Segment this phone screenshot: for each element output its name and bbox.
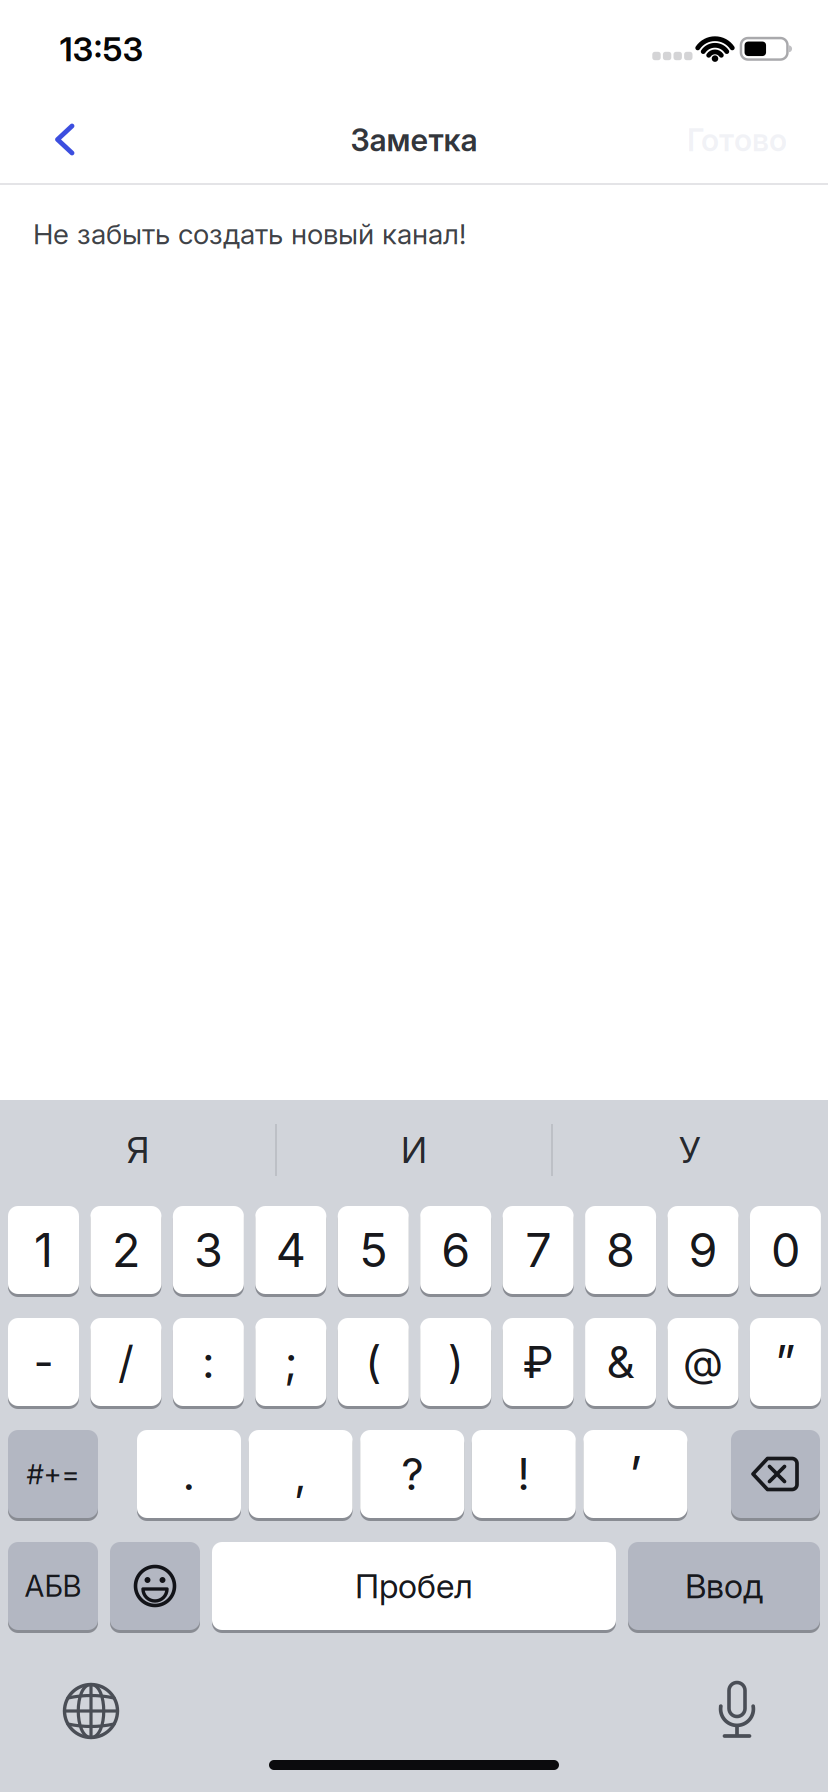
staticText: ,: [294, 1448, 307, 1500]
button[interactable]: ₽: [503, 1318, 574, 1406]
button[interactable]: 8: [585, 1206, 656, 1294]
button[interactable]: (: [338, 1318, 409, 1406]
button[interactable]: ’: [583, 1430, 687, 1518]
staticText: 3: [194, 1222, 223, 1278]
staticText: АБВ: [24, 1569, 81, 1603]
staticText: ;: [284, 1336, 297, 1388]
button[interactable]: #+=: [8, 1430, 98, 1518]
staticText: Не забыть создать новый канал!: [33, 217, 466, 250]
staticText: И: [401, 1129, 427, 1171]
button[interactable]: [47, 1667, 135, 1755]
staticText: ”: [775, 1334, 796, 1390]
staticText: -: [33, 1336, 53, 1388]
button[interactable]: 3: [173, 1206, 244, 1294]
button[interactable]: 0: [750, 1206, 821, 1294]
button[interactable]: ?: [360, 1430, 464, 1518]
staticText: Пробел: [355, 1566, 473, 1606]
button[interactable]: :: [173, 1318, 244, 1406]
button[interactable]: [110, 1542, 200, 1630]
staticText: 13:53: [59, 29, 143, 69]
staticText: !: [517, 1448, 530, 1500]
button[interactable]: @: [667, 1318, 738, 1406]
button[interactable]: 6: [420, 1206, 491, 1294]
staticText: 9: [688, 1222, 717, 1278]
staticText: 8: [606, 1222, 635, 1278]
button[interactable]: 7: [503, 1206, 574, 1294]
button[interactable]: Ввод: [628, 1542, 820, 1630]
staticText: 2: [112, 1222, 140, 1278]
button[interactable]: 4: [255, 1206, 326, 1294]
button[interactable]: 5: [338, 1206, 409, 1294]
staticText: 7: [525, 1222, 551, 1278]
button[interactable]: ): [420, 1318, 491, 1406]
staticText: 0: [771, 1222, 800, 1278]
staticText: 1: [34, 1222, 53, 1278]
staticText: :: [202, 1336, 215, 1388]
staticText: 4: [276, 1222, 306, 1278]
staticText: ): [448, 1336, 464, 1388]
staticText: ’: [629, 1445, 642, 1503]
staticText: Готово: [687, 122, 787, 158]
button[interactable]: 2: [90, 1206, 161, 1294]
button[interactable]: ;: [255, 1318, 326, 1406]
staticText: У: [679, 1129, 701, 1171]
button[interactable]: Пробел: [212, 1542, 616, 1630]
button[interactable]: ,: [249, 1430, 353, 1518]
button[interactable]: У: [555, 1102, 825, 1198]
button[interactable]: [8, 95, 96, 183]
staticText: .: [182, 1448, 195, 1500]
button[interactable]: 9: [667, 1206, 738, 1294]
button[interactable]: !: [472, 1430, 576, 1518]
staticText: 5: [359, 1222, 387, 1278]
button[interactable]: ”: [750, 1318, 821, 1406]
staticText: ₽: [523, 1336, 554, 1388]
staticText: /: [118, 1336, 134, 1388]
button[interactable]: [693, 1665, 781, 1753]
staticText: Ввод: [685, 1566, 763, 1606]
staticText: ?: [401, 1448, 423, 1500]
button[interactable]: [731, 1430, 820, 1518]
staticText: (: [365, 1336, 381, 1388]
staticText: &: [607, 1336, 635, 1388]
staticText: Заметка: [350, 122, 477, 158]
button[interactable]: /: [90, 1318, 161, 1406]
button[interactable]: -: [8, 1318, 79, 1406]
button[interactable]: И: [279, 1102, 549, 1198]
button[interactable]: .: [137, 1430, 241, 1518]
button[interactable]: АБВ: [8, 1542, 98, 1630]
staticText: @: [683, 1338, 722, 1386]
button[interactable]: &: [585, 1318, 656, 1406]
button[interactable]: 1: [8, 1206, 79, 1294]
staticText: Я: [126, 1129, 149, 1171]
button[interactable]: Готово: [657, 96, 817, 184]
staticText: #+=: [26, 1457, 79, 1490]
staticText: 6: [441, 1222, 470, 1278]
button[interactable]: Я: [3, 1102, 273, 1198]
